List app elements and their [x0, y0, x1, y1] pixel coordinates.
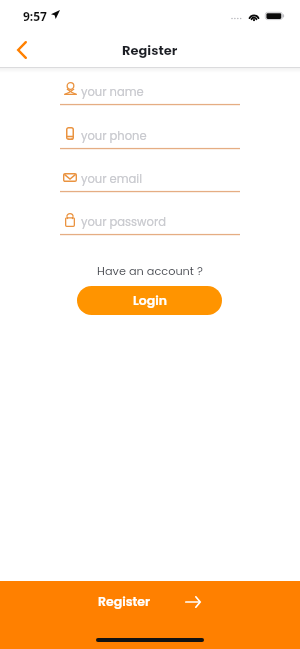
staticText: Have an account ? [0, 263, 300, 279]
button[interactable]: your name [60, 74, 240, 105]
staticText: Login [133, 292, 167, 309]
button[interactable]: Login [77, 286, 222, 315]
staticText: Register [122, 41, 178, 59]
staticText: Register [98, 593, 151, 610]
button[interactable]: your email [60, 161, 240, 192]
other: Next [185, 596, 201, 608]
button[interactable]: Back [3, 31, 40, 68]
staticText: 9:57 [23, 8, 47, 24]
button[interactable]: your phone [60, 118, 240, 149]
button[interactable]: your password [60, 204, 240, 235]
button[interactable]: Register [0, 581, 300, 649]
staticText: your phone [81, 128, 147, 144]
staticText: your email [81, 171, 142, 187]
staticText: your name [81, 84, 144, 100]
staticText: your password [81, 214, 166, 230]
